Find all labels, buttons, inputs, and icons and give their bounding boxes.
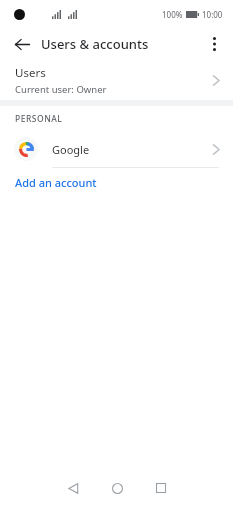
staticText: 10:00	[202, 9, 223, 20]
staticText: PERSONAL	[15, 113, 63, 125]
button[interactable]: Back	[51, 470, 95, 506]
button[interactable]: More options	[200, 30, 228, 58]
button[interactable]: Add an account	[0, 168, 233, 197]
button[interactable]: Home	[95, 470, 139, 506]
staticText: Add an account	[15, 175, 97, 190]
button[interactable]: Google	[0, 131, 233, 167]
button[interactable]: Recents	[139, 470, 183, 506]
staticText: Users	[15, 65, 46, 81]
staticText: Current user: Owner	[15, 83, 107, 96]
staticText: Google	[52, 142, 90, 157]
staticText: Users & accounts	[41, 35, 149, 53]
button[interactable]: Users	[0, 60, 233, 100]
staticText: 100%	[162, 9, 183, 20]
button[interactable]: Back	[8, 30, 36, 58]
